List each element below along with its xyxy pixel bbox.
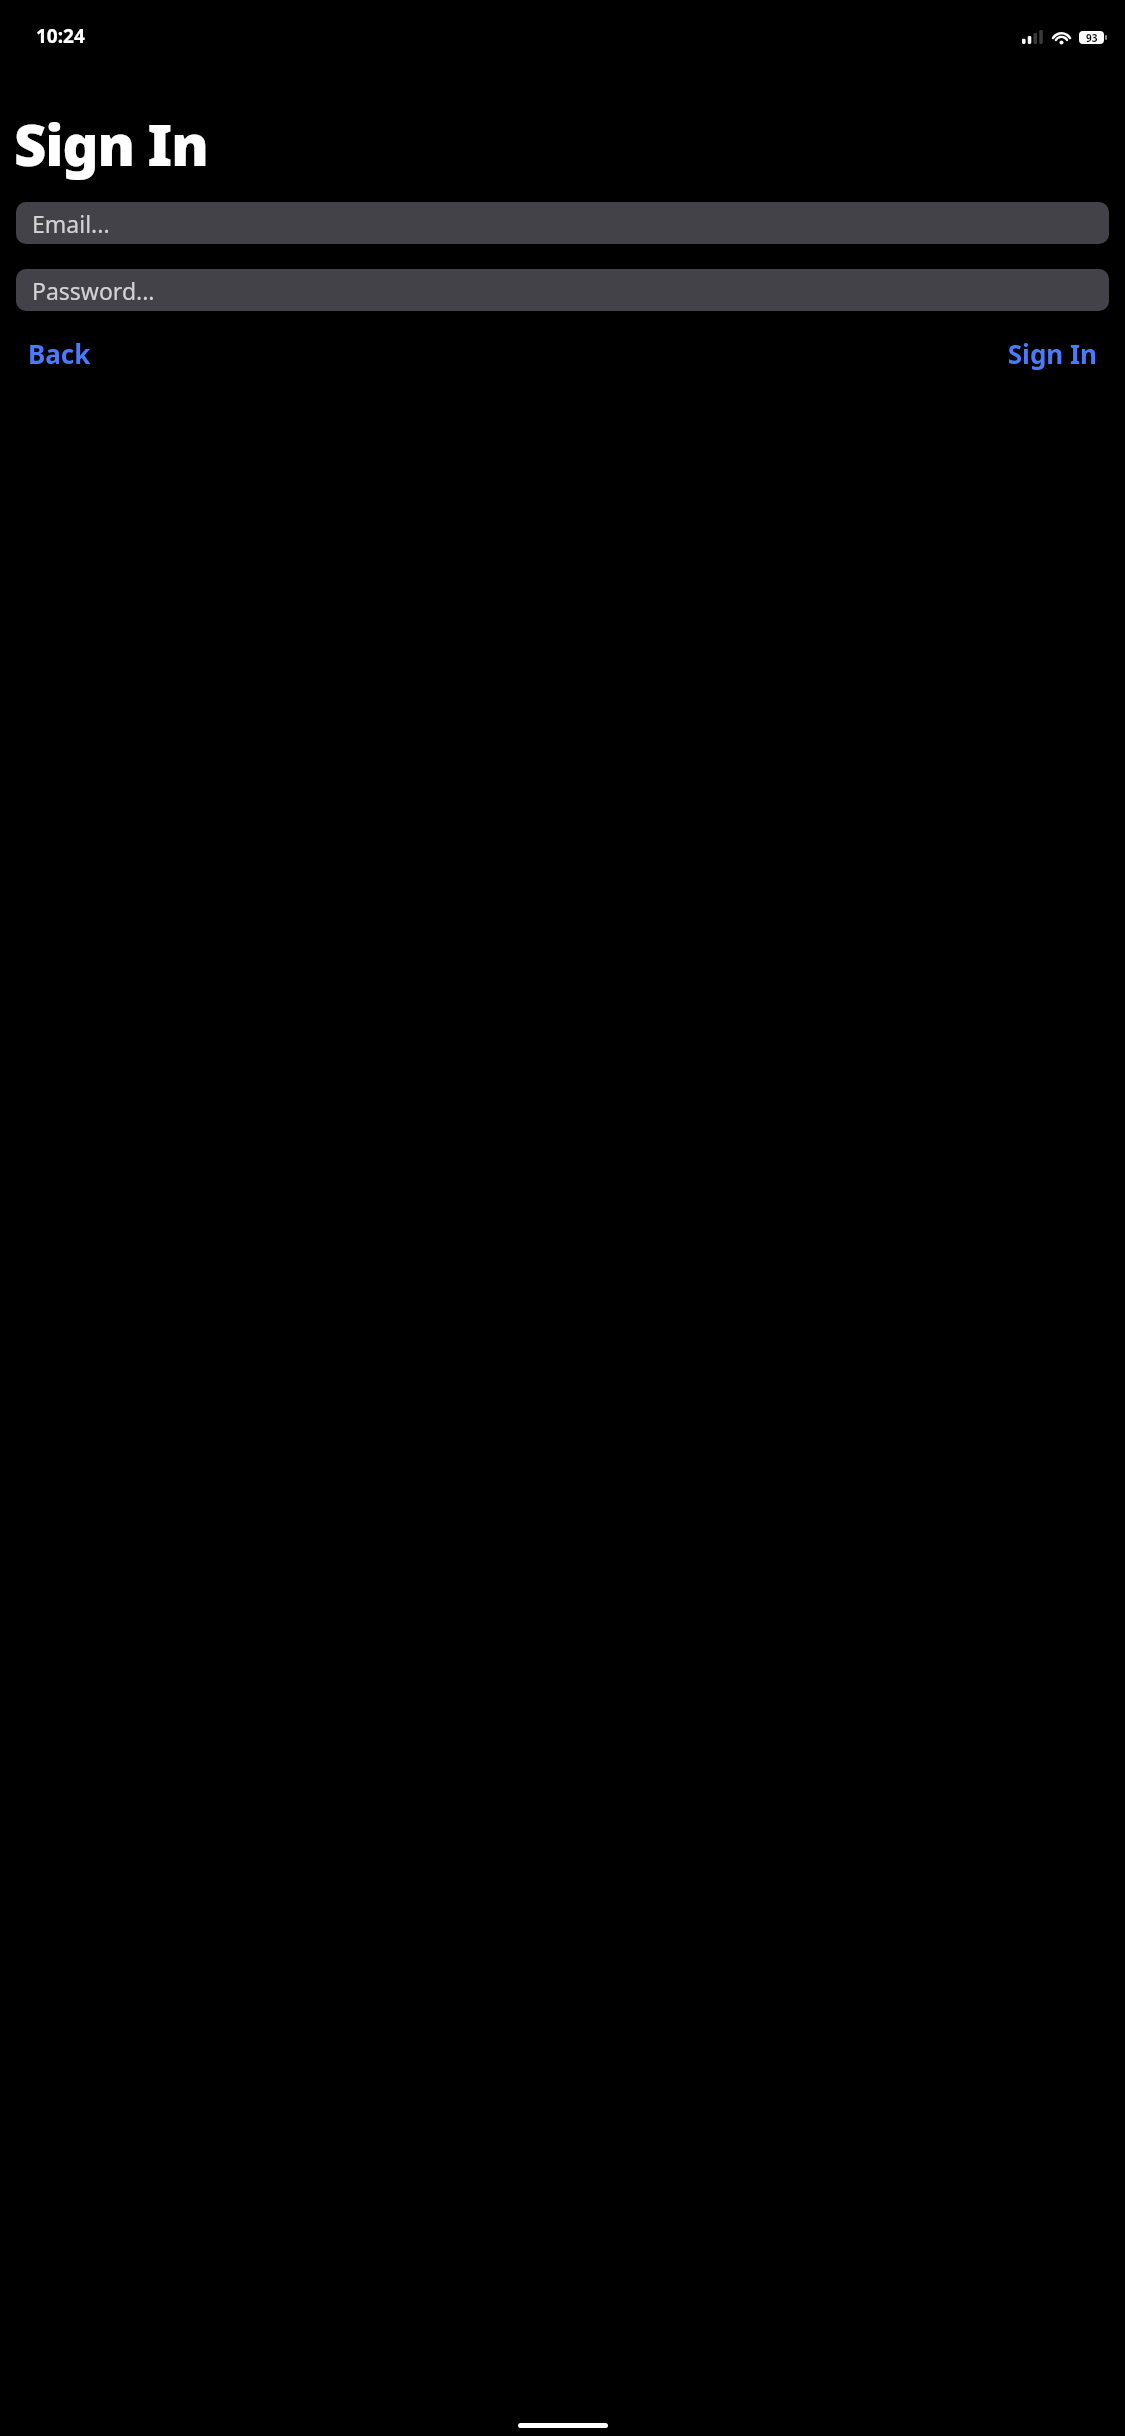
staticText: 93 bbox=[1086, 31, 1098, 44]
button[interactable]: Sign In bbox=[995, 330, 1109, 377]
staticText: 10:24 bbox=[36, 23, 85, 49]
staticText: Sign In bbox=[1007, 336, 1097, 371]
staticText: Email... bbox=[32, 208, 110, 239]
staticText: Sign In bbox=[14, 106, 208, 182]
staticText: Password... bbox=[32, 275, 155, 306]
button[interactable]: Back bbox=[16, 330, 103, 377]
button[interactable]: Password... bbox=[16, 269, 1109, 311]
staticText: Back bbox=[28, 336, 91, 371]
button[interactable]: Email... bbox=[16, 202, 1109, 244]
